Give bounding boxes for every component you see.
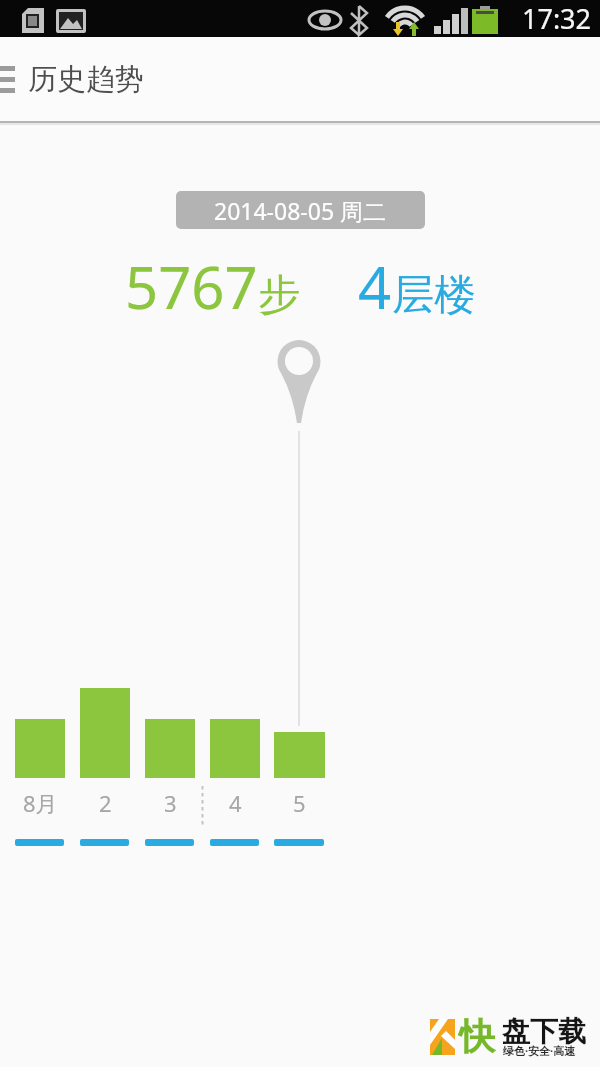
staticText: 2 [99,788,112,818]
staticText: 3 [164,788,177,818]
staticText: 快 [459,1014,495,1059]
staticText: 5 [293,788,306,818]
staticText: 绿色·安全·高速 [503,1043,576,1058]
staticText: 盘下载 [502,1014,586,1049]
staticText: 步 [258,269,300,322]
button[interactable]: 2 [70,788,140,818]
staticText: 2014-08-05 周二 [214,195,387,226]
staticText: 8月 [23,788,58,818]
button[interactable]: 8月 [5,788,75,818]
button[interactable]: 3 [135,788,205,818]
staticText: 5767 [125,247,258,326]
staticText: 4 [229,788,242,818]
staticText: 历史趋势 [28,61,144,98]
staticText: 层楼 [392,269,476,322]
button[interactable]: 2014-08-05 周二 [176,191,425,229]
staticText: 4 [358,247,392,326]
button[interactable] [0,66,15,93]
button[interactable]: 5 [264,788,334,818]
button[interactable]: 4 [200,788,270,818]
staticText: 17:32 [522,0,592,37]
